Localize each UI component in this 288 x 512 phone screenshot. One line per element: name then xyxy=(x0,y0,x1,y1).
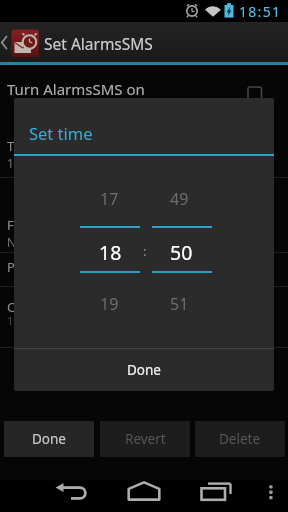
staticText: : xyxy=(143,242,147,260)
button[interactable] xyxy=(4,421,94,457)
staticText: Time to send message xyxy=(7,137,144,155)
staticText: 19 xyxy=(100,293,119,315)
staticText: Turn AlarmsSMS on xyxy=(7,79,145,99)
button[interactable] xyxy=(14,349,274,391)
staticText: Done xyxy=(32,430,66,448)
staticText: None set for this now xyxy=(7,234,128,250)
button[interactable] xyxy=(189,480,237,512)
button[interactable] xyxy=(44,480,92,512)
button[interactable] xyxy=(0,22,288,62)
staticText: Phone number to use xyxy=(7,258,140,276)
staticText: 18 xyxy=(99,239,122,266)
staticText: 50 xyxy=(170,239,193,266)
button[interactable] xyxy=(195,421,285,457)
staticText: Revert xyxy=(125,430,166,448)
staticText: 17 xyxy=(100,188,119,210)
button[interactable] xyxy=(100,421,190,457)
staticText: Set AlarmsSMS xyxy=(44,33,153,54)
staticText: From number filtering xyxy=(7,216,143,234)
button[interactable] xyxy=(258,480,286,512)
staticText: Set time xyxy=(29,122,93,144)
staticText: 18:50, every day set xyxy=(7,313,109,328)
staticText: Delete xyxy=(219,430,261,448)
staticText: 18:51 xyxy=(239,2,282,21)
staticText: 18:50 something here xyxy=(7,155,131,171)
button[interactable] xyxy=(120,480,168,512)
staticText: Done xyxy=(127,361,161,379)
staticText: 51 xyxy=(170,293,189,315)
button[interactable] xyxy=(0,66,288,98)
staticText: 49 xyxy=(170,188,189,210)
staticText: Content of messages xyxy=(7,298,136,316)
